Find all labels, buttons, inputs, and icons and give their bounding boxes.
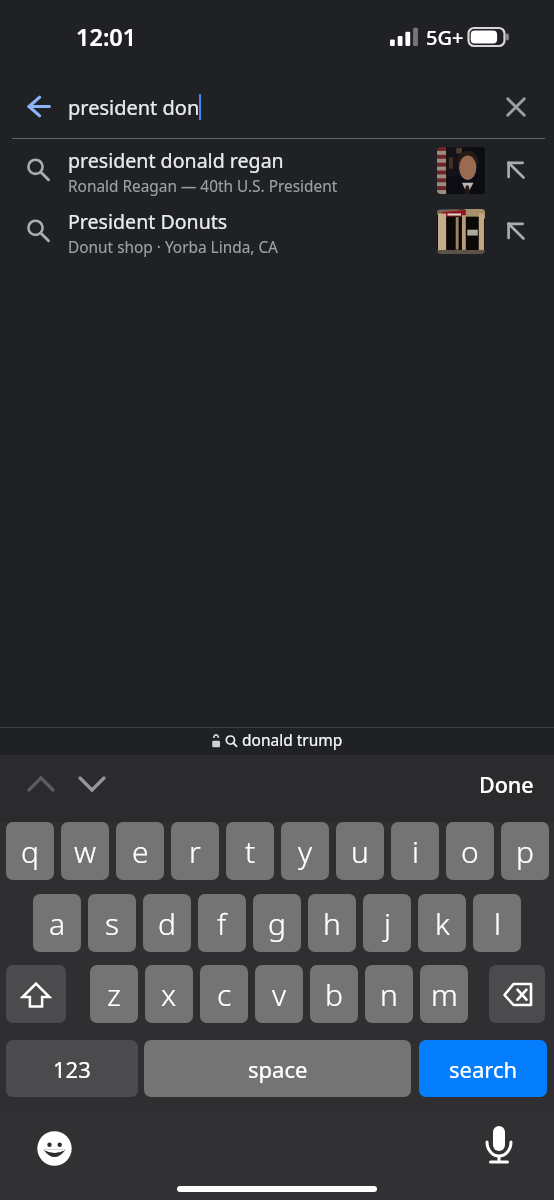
staticText: t [245,831,256,872]
button[interactable]: Insert suggestion [498,213,532,247]
staticText: h [323,903,341,944]
staticText: e [132,831,149,872]
staticText: g [268,903,286,944]
staticText: f [217,903,227,944]
staticText: President Donuts [68,208,228,235]
staticText: president don [68,94,200,121]
button[interactable]: Backspace [489,965,545,1023]
staticText: y [298,831,313,872]
staticText: a [49,903,66,944]
staticText: i [412,831,419,872]
button[interactable]: j [363,894,411,952]
staticText: search [449,1054,518,1084]
button[interactable]: f [198,894,246,952]
button[interactable]: i [391,822,439,880]
button[interactable]: Voice input [478,1123,520,1165]
button[interactable]: v [255,965,303,1023]
staticText: x [161,974,177,1015]
staticText: k [435,903,450,944]
button[interactable]: s [88,894,136,952]
staticText: q [21,831,39,872]
button[interactable]: q [6,822,54,880]
button[interactable]: Shift [6,965,66,1023]
button[interactable]: p [501,822,549,880]
button[interactable]: u [336,822,384,880]
button[interactable]: r [171,822,219,880]
staticText: d [158,903,176,944]
button[interactable]: l [473,894,521,952]
button[interactable]: o [446,822,494,880]
staticText: v [272,974,287,1015]
staticText: p [516,831,534,872]
button[interactable]: Done [470,764,542,804]
button[interactable]: Next field [71,763,113,813]
button[interactable]: k [418,894,466,952]
button[interactable]: president donald regan [0,139,554,200]
button[interactable]: Emoji [33,1127,77,1171]
staticText: n [380,974,398,1015]
staticText: c [217,974,232,1015]
button[interactable]: Back [18,88,58,128]
staticText: Donut shop · Yorba Linda, CA [68,237,278,258]
button[interactable]: t [226,822,274,880]
button[interactable]: c [200,965,248,1023]
staticText: u [351,831,369,872]
staticText: o [461,831,479,872]
staticText: space [248,1054,308,1084]
button[interactable]: Clear [497,88,535,126]
staticText: Ronald Reagan — 40th U.S. President [68,176,338,197]
button[interactable]: space [144,1040,411,1097]
staticText: j [384,903,391,944]
button[interactable]: m [420,965,468,1023]
staticText: Done [479,770,534,799]
button[interactable]: Insert suggestion [498,152,532,186]
staticText: donald trump [242,729,343,750]
staticText: m [431,974,458,1015]
button[interactable]: a [33,894,81,952]
button[interactable]: y [281,822,329,880]
button[interactable]: x [145,965,193,1023]
button[interactable]: Previous field [20,763,62,813]
button[interactable]: President Donuts [0,200,554,261]
button[interactable]: n [365,965,413,1023]
button[interactable]: w [61,822,109,880]
staticText: s [105,903,120,944]
staticText: president donald regan [68,147,284,174]
button[interactable]: b [310,965,358,1023]
button[interactable]: g [253,894,301,952]
staticText: r [189,831,201,872]
staticText: l [494,903,501,944]
staticText: z [107,974,121,1015]
button[interactable]: search [419,1040,547,1097]
staticText: 123 [53,1054,91,1084]
button[interactable]: 123 [6,1040,138,1097]
staticText: w [74,831,97,872]
staticText: b [325,974,343,1015]
staticText: 12:01 [76,21,137,53]
button[interactable]: z [90,965,138,1023]
staticText: 5G+ [426,24,464,51]
button[interactable]: h [308,894,356,952]
button[interactable]: d [143,894,191,952]
button[interactable]: donald trump [212,729,343,750]
button[interactable]: e [116,822,164,880]
